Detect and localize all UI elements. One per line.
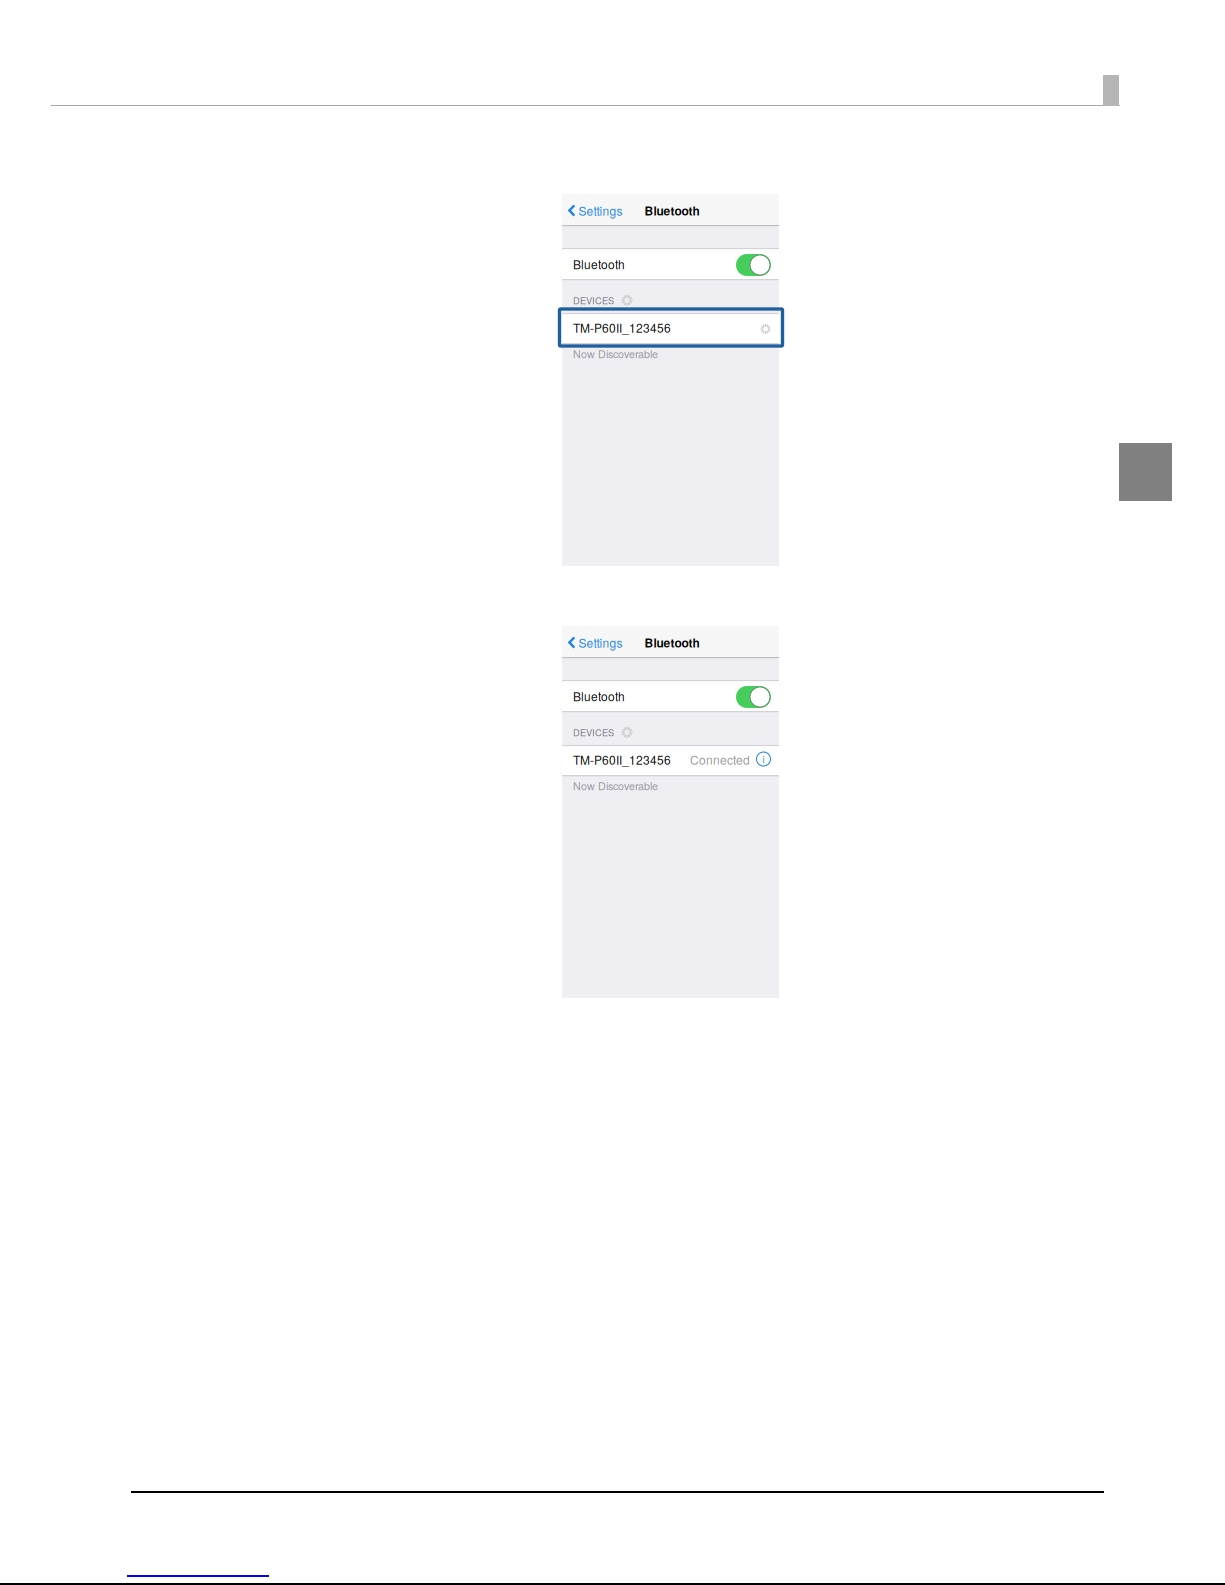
staticText: Bluetooth [645, 202, 700, 219]
button[interactable]: TM-P60II_123456 [562, 315, 779, 343]
staticText: DEVICES [573, 726, 614, 739]
staticText: Settings [579, 634, 623, 651]
staticText: Now Discoverable [573, 346, 658, 361]
staticText: Settings [579, 202, 623, 219]
button[interactable]: Settings [562, 194, 628, 225]
staticText: Connected [690, 751, 750, 768]
staticText: Bluetooth [645, 634, 700, 651]
button[interactable]: TM-P60II_123456 [562, 747, 779, 775]
staticText: TM-P60II_123456 [573, 751, 671, 768]
button[interactable]: More info about TM-P60II_123456 [756, 751, 771, 766]
staticText: DEVICES [573, 294, 614, 307]
staticText: Now Discoverable [573, 778, 658, 793]
button[interactable]: Settings [562, 626, 628, 657]
staticText: i [762, 752, 764, 766]
button[interactable]: Bluetooth, on [736, 254, 771, 276]
staticText: TM-P60II_123456 [573, 319, 671, 336]
staticText: Bluetooth [573, 255, 625, 273]
button[interactable]: Bluetooth, on [736, 686, 771, 708]
staticText: Bluetooth [573, 687, 625, 705]
